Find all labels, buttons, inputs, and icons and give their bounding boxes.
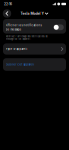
staticText: Afficher les notifications <box>6 24 42 27</box>
staticText: 22:16 <box>4 2 12 6</box>
staticText: de message <box>6 28 22 31</box>
staticText: Tesla Model Y <box>20 11 43 16</box>
button[interactable]: Afficher les notifications <box>3 19 66 34</box>
button[interactable]: Type d'appareil <box>3 43 66 55</box>
staticText: Type d'appareil <box>6 47 28 51</box>
staticText: Oublier cet appareil <box>6 63 35 66</box>
button[interactable]: Tesla Model Y <box>19 10 50 17</box>
button[interactable]: Oublier cet appareil <box>3 58 66 71</box>
staticText: Autorisez l'affichage des notifications … <box>5 35 47 40</box>
button[interactable]: Retour <box>2 8 12 18</box>
